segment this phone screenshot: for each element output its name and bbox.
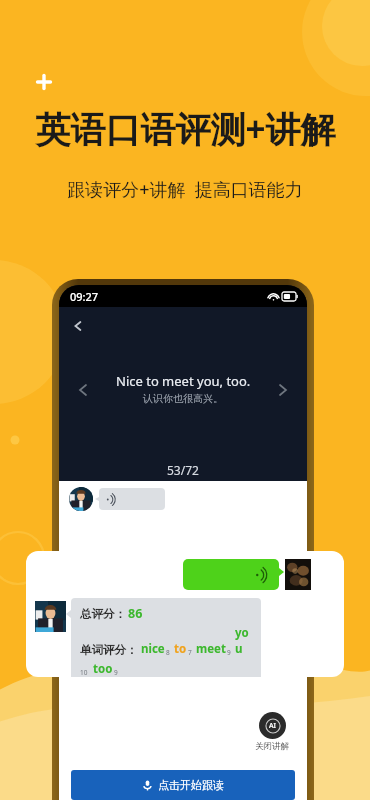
staticText: 英语口语评测+讲解 [35,105,336,153]
staticText: 认识你也很高兴。 [143,392,223,405]
staticText: 点击开始跟读 [158,778,224,792]
staticText: to [174,641,187,657]
staticText: 86 [128,605,143,622]
staticText: AI [269,721,277,731]
staticText: 单词评分： [80,643,138,657]
staticText: Nice to meet you, too. [116,372,251,390]
button[interactable]: Play my recording [183,559,279,590]
staticText: 关闭讲解 [255,741,289,752]
button[interactable]: Previous sentence [73,380,93,400]
button[interactable]: Back [65,313,91,339]
staticText: too [93,661,113,677]
staticText: 8 [166,648,170,657]
staticText: meet [196,641,226,657]
staticText: nice [141,641,165,657]
staticText: 7 [188,648,192,657]
staticText: 跟读评分+讲解 提高口语能力 [67,177,303,202]
staticText: 总评分： [80,607,126,621]
staticText: you [235,625,253,657]
staticText: 53/72 [167,462,199,478]
button[interactable]: Next sentence [273,380,293,400]
staticText: 9 [227,648,231,657]
staticText: 10 [80,668,88,677]
staticText: 09:27 [70,289,99,304]
button[interactable]: Play teacher audio [99,488,165,510]
staticText: 9 [114,668,118,677]
button[interactable]: 点击开始跟读 [71,770,295,800]
button[interactable]: 关闭讲解 [255,712,289,752]
